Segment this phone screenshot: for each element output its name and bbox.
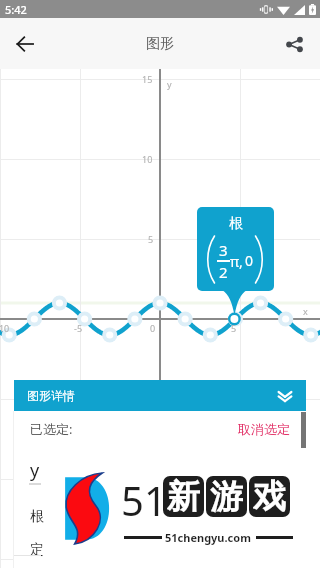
staticText: 取消选定 [238,421,290,437]
staticText: y [167,78,172,90]
button[interactable]: Back [8,27,42,61]
staticText: 5 [231,322,237,334]
button[interactable]: Share [277,27,311,61]
staticText: 51 [121,473,167,527]
staticText: -5 [74,322,83,334]
staticText: 3 [219,240,228,260]
staticText: x [303,305,308,317]
staticText: 15 [142,73,153,85]
staticText: 根 [229,215,243,233]
staticText: 图形 [146,35,174,53]
staticText: 10 [142,153,153,165]
staticText: 新 [167,476,200,517]
staticText: 游 [210,476,243,517]
staticText: π [230,252,240,271]
staticText: 5 [148,233,154,245]
staticText: 戏 [253,476,286,517]
button[interactable]: 已选定: [14,411,306,447]
staticText: 5:42 [5,2,27,17]
button[interactable]: 根 [197,207,274,314]
staticText: -10 [0,322,10,334]
staticText: 0 [150,322,156,334]
staticText: 0 [245,251,254,270]
staticText: 图形详情 [27,388,75,403]
button[interactable]: 图形详情 [14,380,306,411]
staticText: , [239,252,243,271]
staticText: 已选定: [30,420,73,438]
staticText: y [30,458,40,483]
staticText: 根 [30,508,44,526]
staticText: 定 [30,541,44,559]
staticText: 51chengyu.com [165,530,251,545]
staticText: 2 [219,262,228,282]
